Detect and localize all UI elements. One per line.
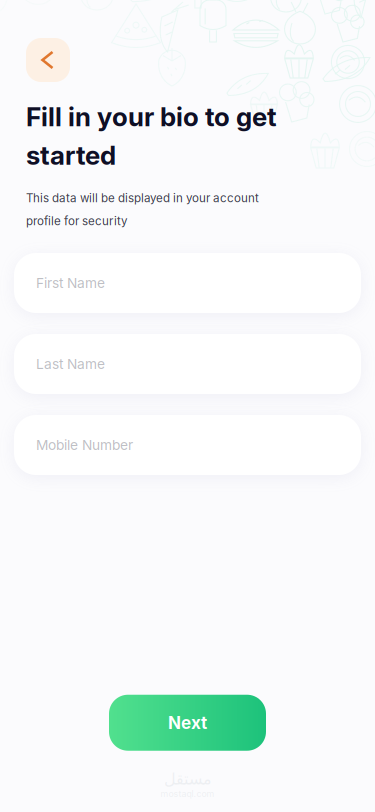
staticText: Mobile Number (36, 437, 133, 453)
button[interactable]: First Name (14, 253, 361, 313)
staticText: This data will be displayed in your acco… (26, 191, 259, 228)
staticText: Next (168, 712, 207, 733)
staticText: Last Name (36, 356, 105, 372)
staticText: mostaql.com (160, 788, 214, 799)
staticText: مستقل (163, 770, 211, 788)
button[interactable]: Next (109, 695, 266, 751)
button[interactable]: Mobile Number (14, 415, 361, 475)
staticText: Fill in your bio to get started (26, 101, 277, 171)
button[interactable]: Last Name (14, 334, 361, 394)
staticText: First Name (36, 275, 105, 291)
button[interactable]: Back (26, 38, 70, 82)
